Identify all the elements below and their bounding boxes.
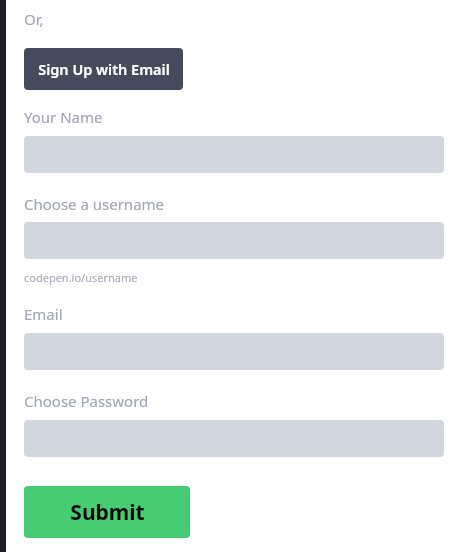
button[interactable]: Submit [24,486,190,538]
staticText: Sign Up with Email [38,59,170,79]
staticText: Or, [24,9,44,29]
staticText: Submit [70,498,145,527]
staticText: Your Name [24,107,103,127]
staticText: Email [24,304,63,324]
staticText: Choose Password [24,391,149,411]
staticText: Choose a username [24,194,165,214]
button[interactable]: Sign Up with Email [24,48,183,90]
staticText: codepen.io/username [24,270,138,285]
